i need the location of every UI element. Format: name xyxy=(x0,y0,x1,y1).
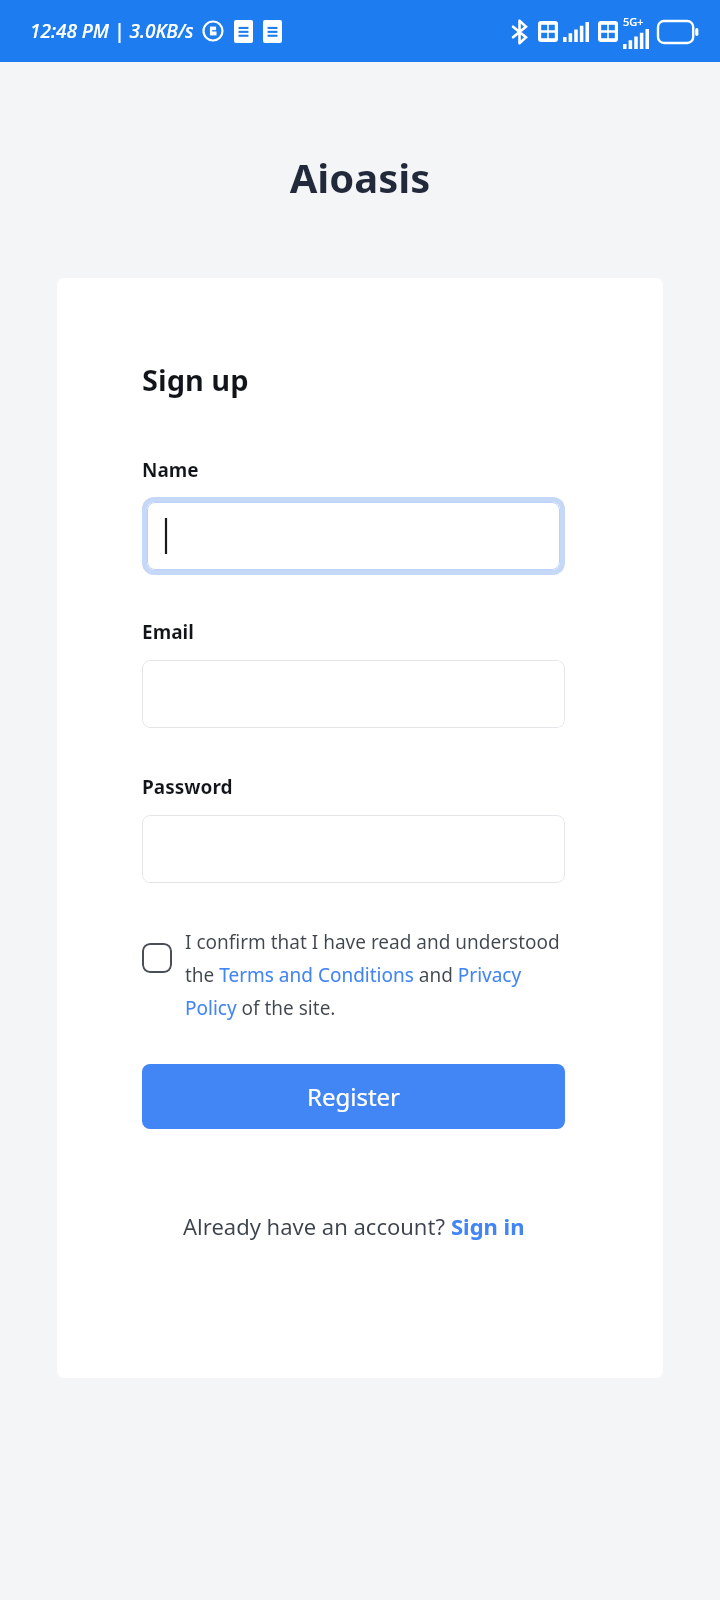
staticText: 5G+ xyxy=(623,14,644,29)
staticText: Name xyxy=(142,457,199,483)
staticText: Sign in xyxy=(451,1211,525,1241)
button[interactable] xyxy=(147,502,560,570)
button[interactable] xyxy=(142,660,565,728)
staticText: Password xyxy=(142,774,233,800)
staticText: 12:48 PM | 3.0KB/s xyxy=(30,18,194,44)
staticText: Already have an account? xyxy=(183,1211,451,1241)
staticText: Register xyxy=(307,1080,401,1113)
button[interactable]: Confirm terms checkbox xyxy=(142,943,172,973)
button[interactable]: Sign in xyxy=(451,1211,525,1241)
button[interactable]: Register xyxy=(142,1064,565,1129)
staticText: Sign up xyxy=(142,360,249,399)
staticText: I confirm that I have read and understoo… xyxy=(185,929,565,1020)
staticText: Aioasis xyxy=(0,150,720,204)
button[interactable] xyxy=(142,815,565,883)
staticText: Email xyxy=(142,619,194,645)
